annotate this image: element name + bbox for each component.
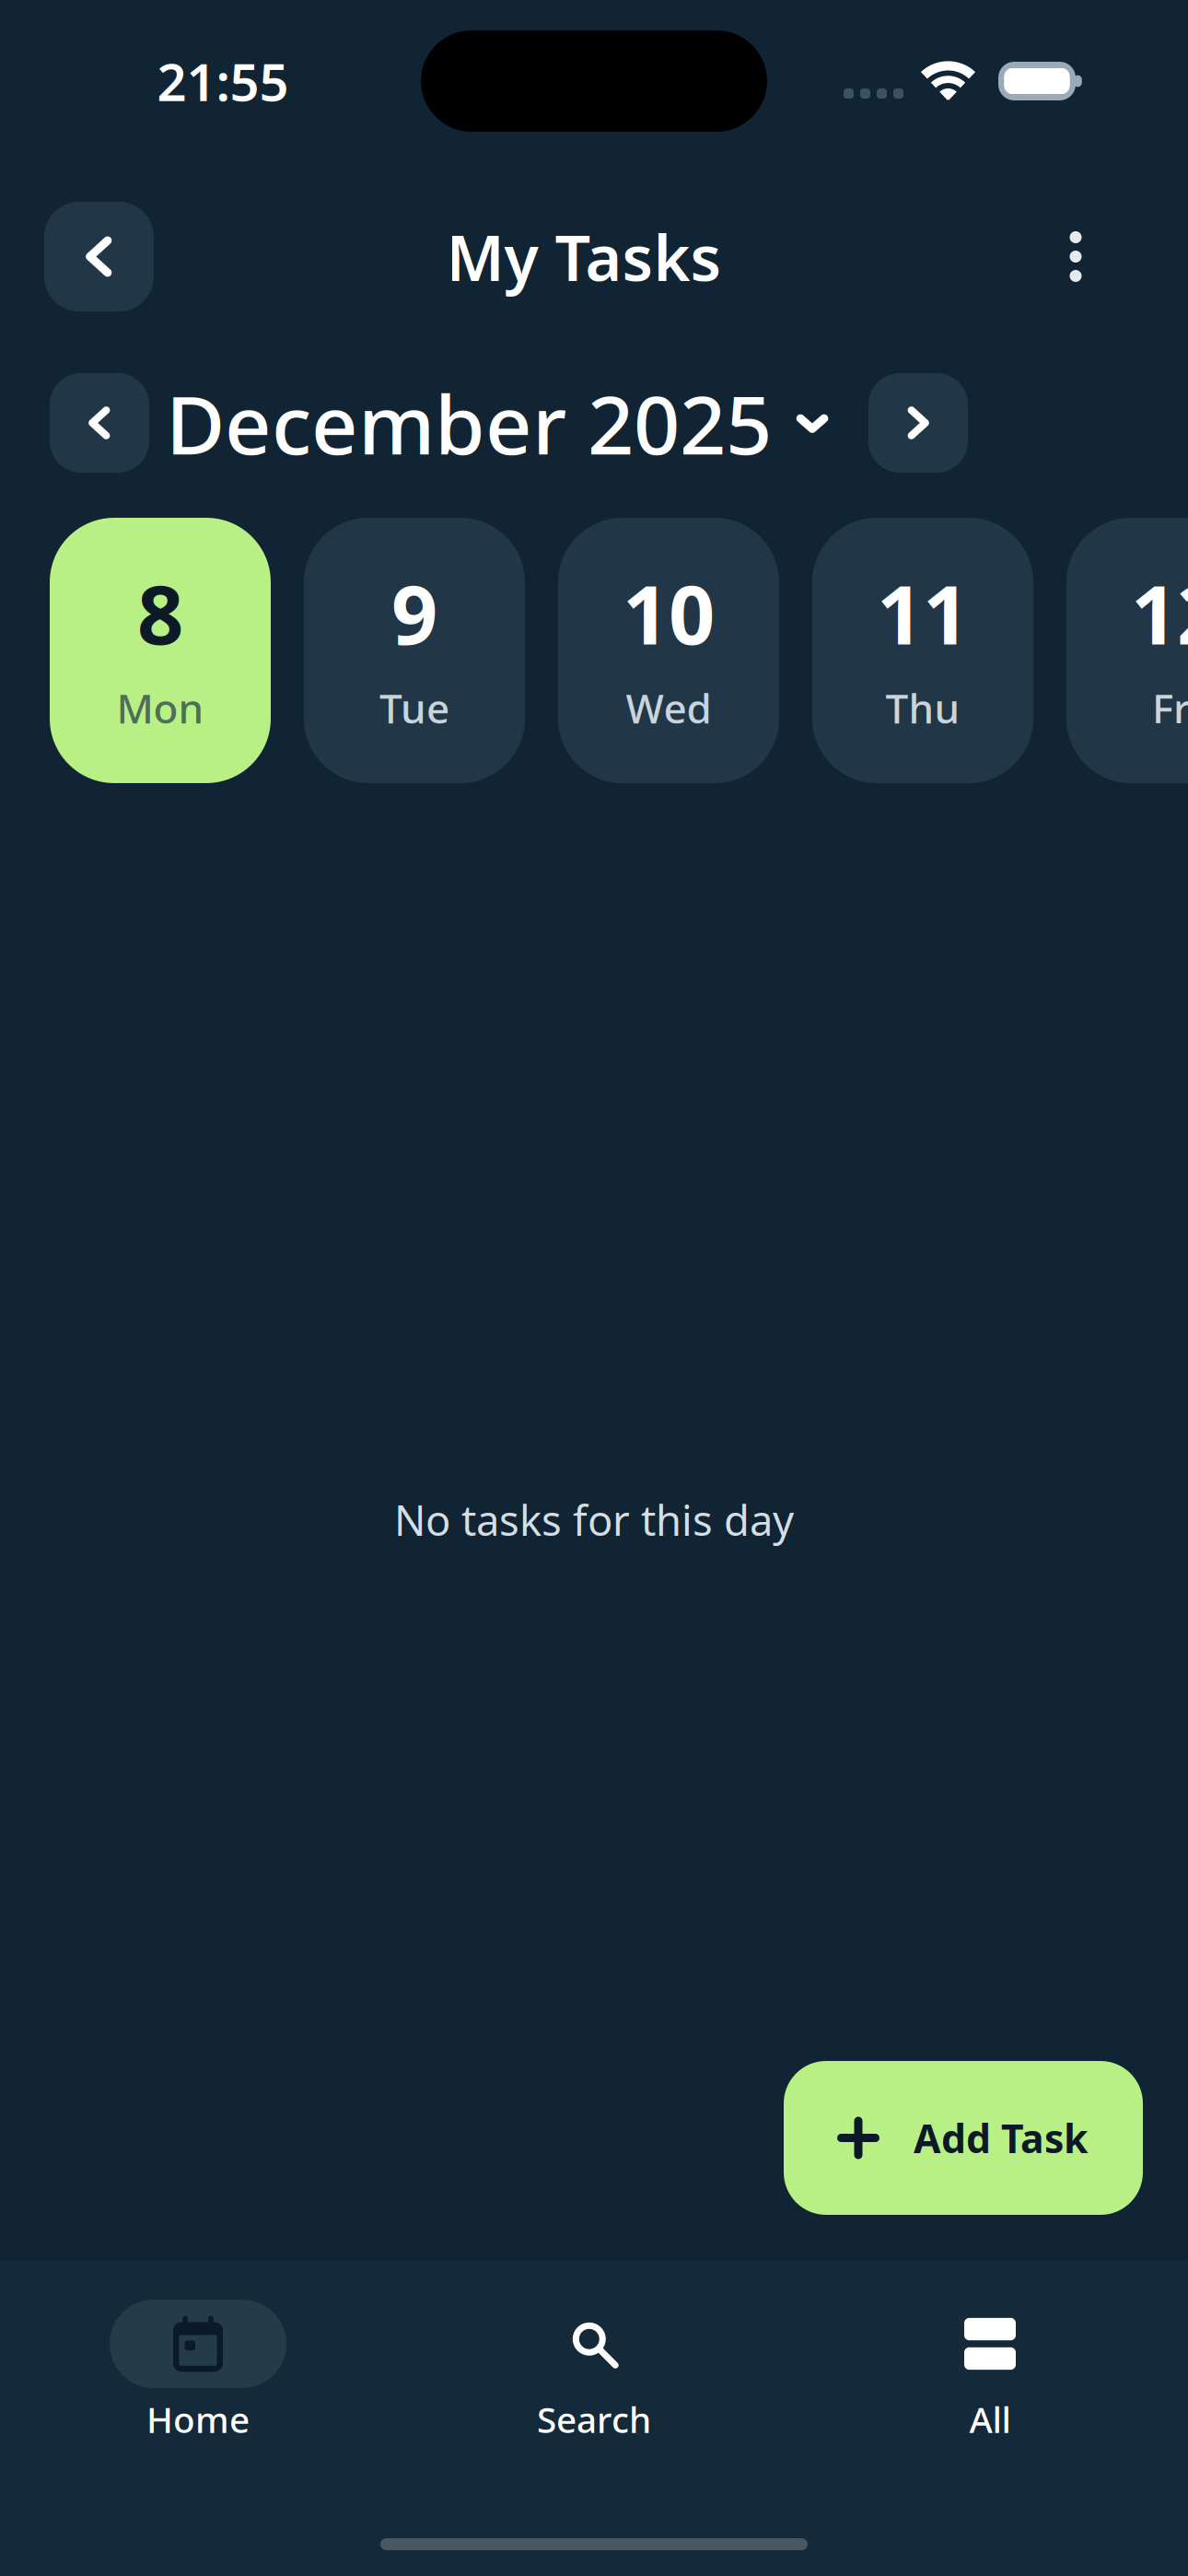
staticText: Search: [537, 2395, 651, 2443]
button[interactable]: 9: [304, 518, 525, 783]
staticText: Mon: [116, 681, 204, 735]
button[interactable]: Next month: [868, 373, 968, 473]
staticText: Wed: [626, 681, 711, 735]
button[interactable]: 10: [558, 518, 779, 783]
staticText: 11: [877, 559, 969, 667]
staticText: Home: [146, 2395, 250, 2443]
staticText: 10: [623, 559, 715, 667]
staticText: Thu: [885, 681, 960, 735]
button[interactable]: December 2025: [149, 369, 831, 477]
button[interactable]: Home: [0, 2300, 396, 2443]
button[interactable]: All: [792, 2300, 1188, 2443]
staticText: My Tasks: [446, 215, 722, 298]
button[interactable]: More options: [1030, 202, 1122, 311]
staticText: December 2025: [166, 369, 772, 477]
staticText: 21:55: [157, 47, 289, 115]
staticText: 9: [391, 559, 437, 667]
staticText: No tasks for this day: [394, 1492, 794, 1547]
staticText: Add Task: [914, 2112, 1088, 2164]
staticText: Fri: [1152, 681, 1188, 735]
button[interactable]: Previous month: [50, 373, 149, 473]
staticText: Tue: [379, 681, 449, 735]
button[interactable]: Add Task: [784, 2061, 1143, 2215]
button[interactable]: 11: [812, 518, 1033, 783]
button[interactable]: 8: [50, 518, 271, 783]
button[interactable]: 12: [1066, 518, 1188, 783]
staticText: All: [969, 2395, 1011, 2443]
staticText: 12: [1131, 559, 1188, 667]
button[interactable]: Back: [44, 202, 154, 311]
button[interactable]: Search: [396, 2300, 792, 2443]
staticText: 8: [137, 559, 183, 667]
